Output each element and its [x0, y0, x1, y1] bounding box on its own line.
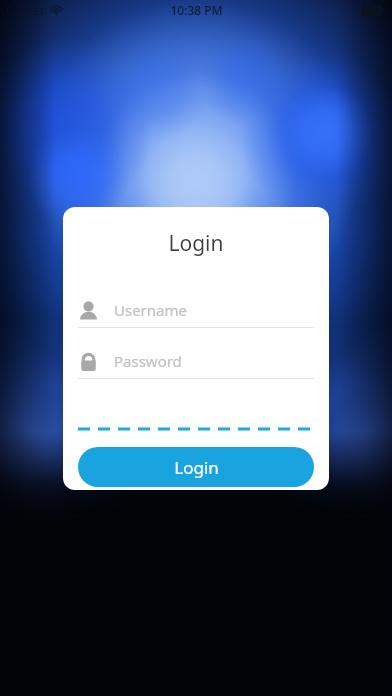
button[interactable]: Login — [78, 447, 314, 487]
staticText: Password — [114, 351, 182, 371]
staticText: Username — [114, 300, 187, 320]
staticText: Login — [78, 229, 314, 258]
staticText: Carrier — [6, 2, 46, 18]
button[interactable]: Username — [78, 293, 314, 328]
staticText: Login — [174, 456, 219, 479]
button[interactable]: Password — [78, 344, 314, 379]
staticText: 10:38 PM — [170, 2, 223, 18]
